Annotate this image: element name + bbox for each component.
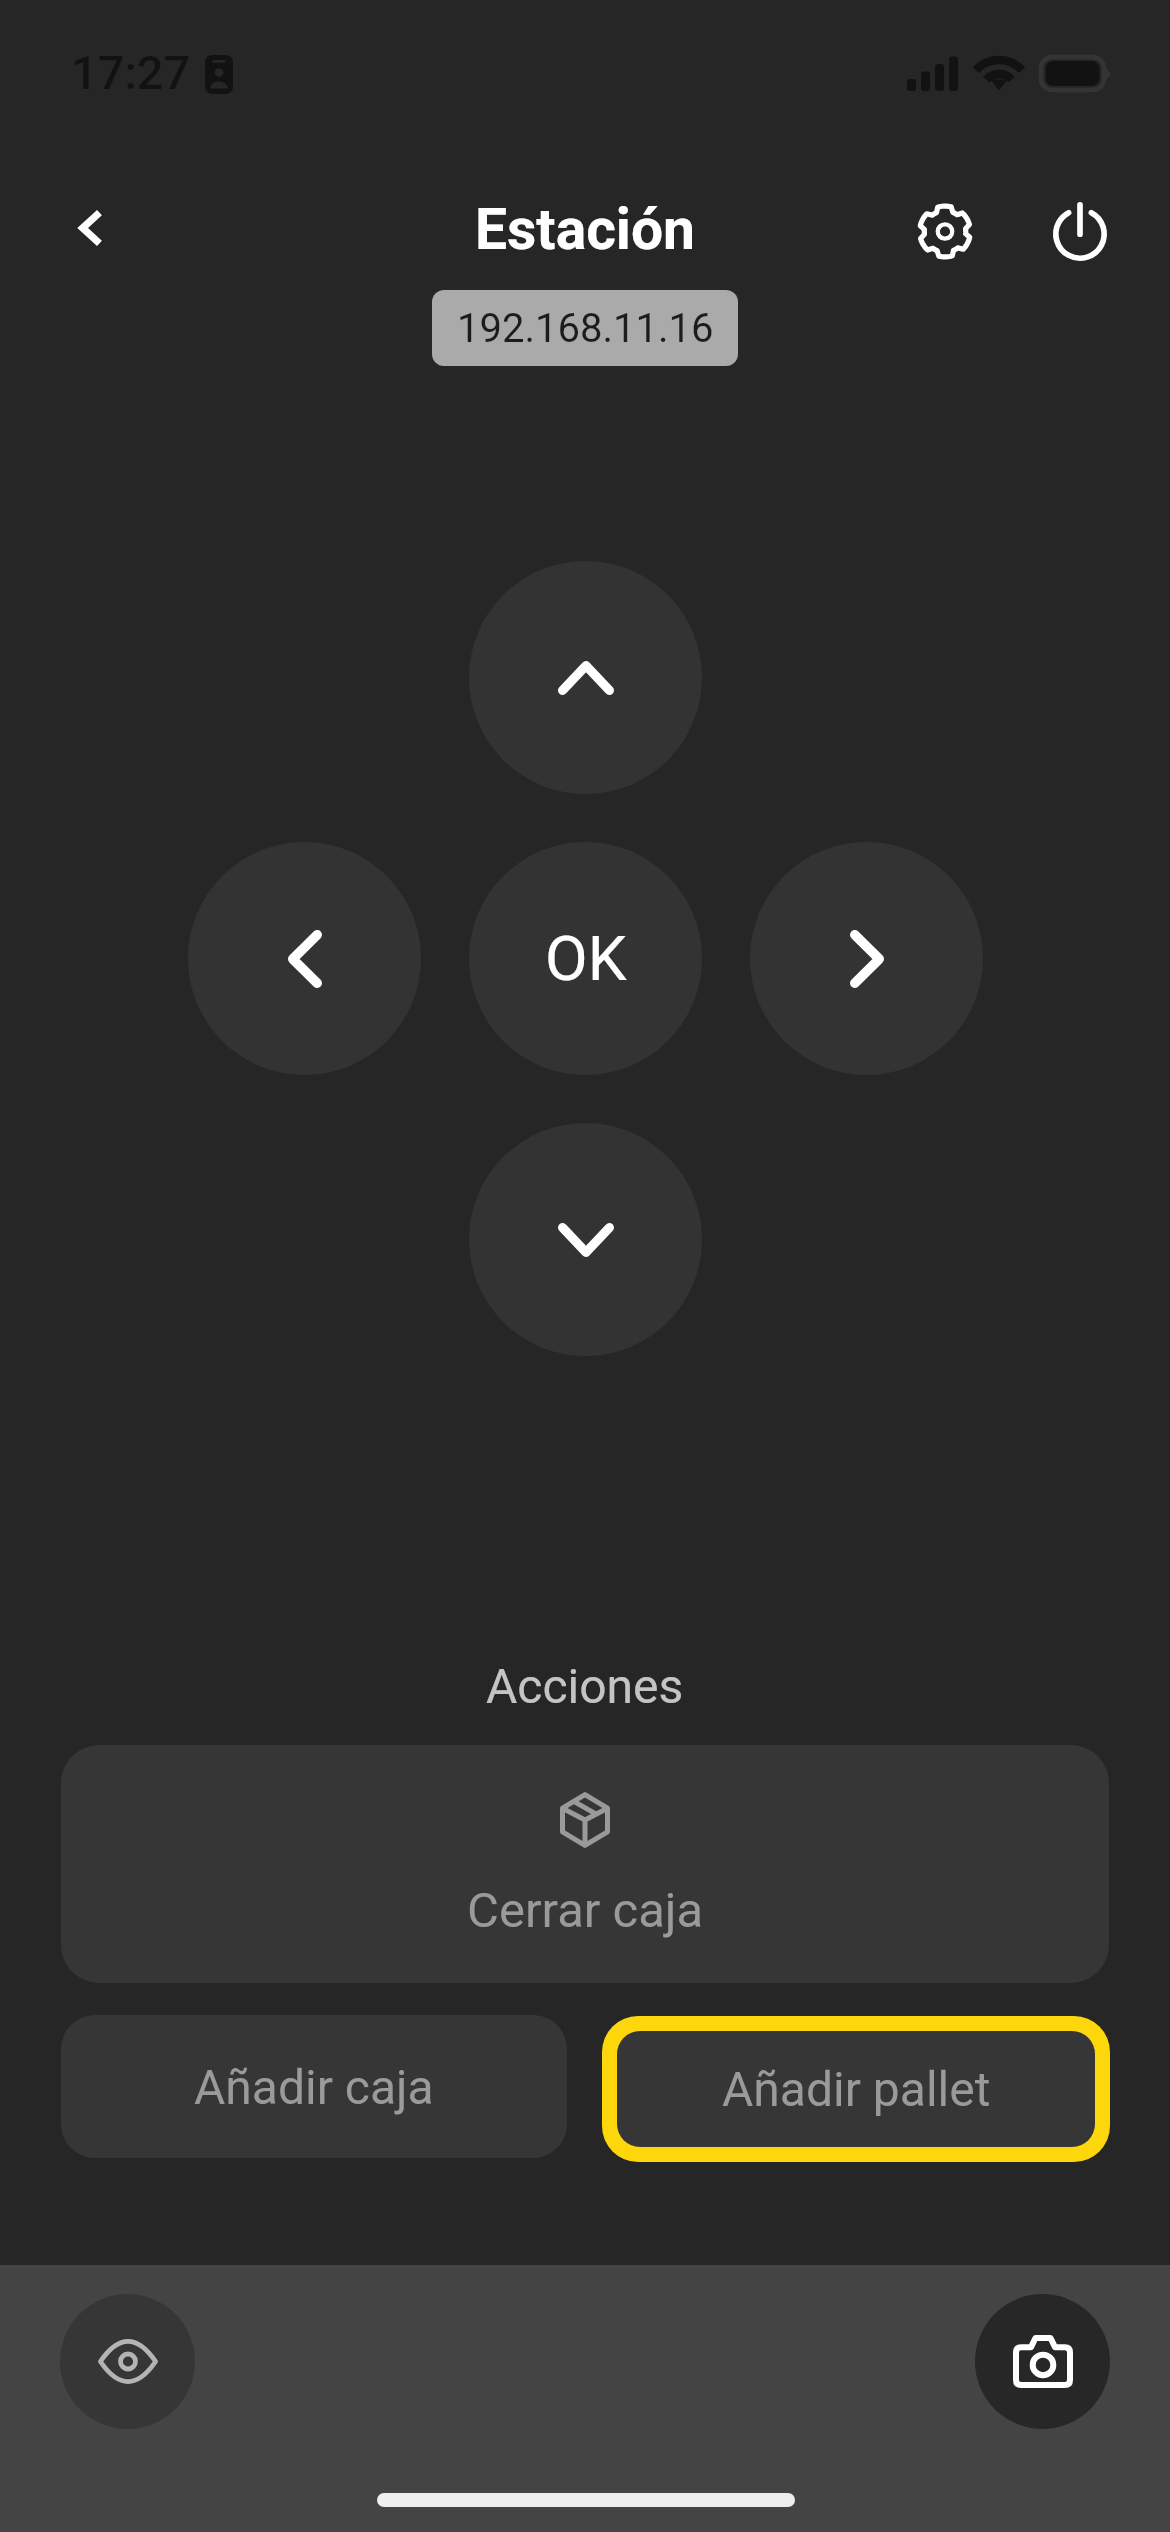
staticText: 17:27 — [71, 45, 191, 100]
button[interactable]: Up — [469, 561, 702, 794]
staticText: Añadir caja — [194, 2059, 434, 2115]
button[interactable]: Añadir pallet — [602, 2016, 1110, 2162]
button[interactable]: Camera — [975, 2294, 1110, 2429]
button[interactable]: Power — [1030, 181, 1130, 281]
button[interactable]: OK — [469, 842, 702, 1075]
button[interactable]: Preview — [60, 2294, 195, 2429]
button[interactable]: Añadir caja — [61, 2015, 567, 2158]
staticText: Añadir pallet — [722, 2061, 991, 2117]
staticText: Cerrar caja — [467, 1882, 704, 1939]
staticText: 192.168.11.16 — [457, 305, 714, 352]
staticText: Estación — [475, 196, 696, 263]
button[interactable]: Left — [188, 842, 421, 1075]
button[interactable]: Right — [750, 842, 983, 1075]
button[interactable]: Settings — [895, 181, 995, 281]
button[interactable]: 192.168.11.16 — [432, 290, 738, 366]
staticText: Acciones — [486, 1658, 684, 1714]
button[interactable]: Down — [469, 1123, 702, 1356]
staticText: OK — [545, 922, 627, 995]
button[interactable]: Back — [42, 180, 138, 276]
button[interactable]: Cerrar caja — [61, 1745, 1109, 1983]
